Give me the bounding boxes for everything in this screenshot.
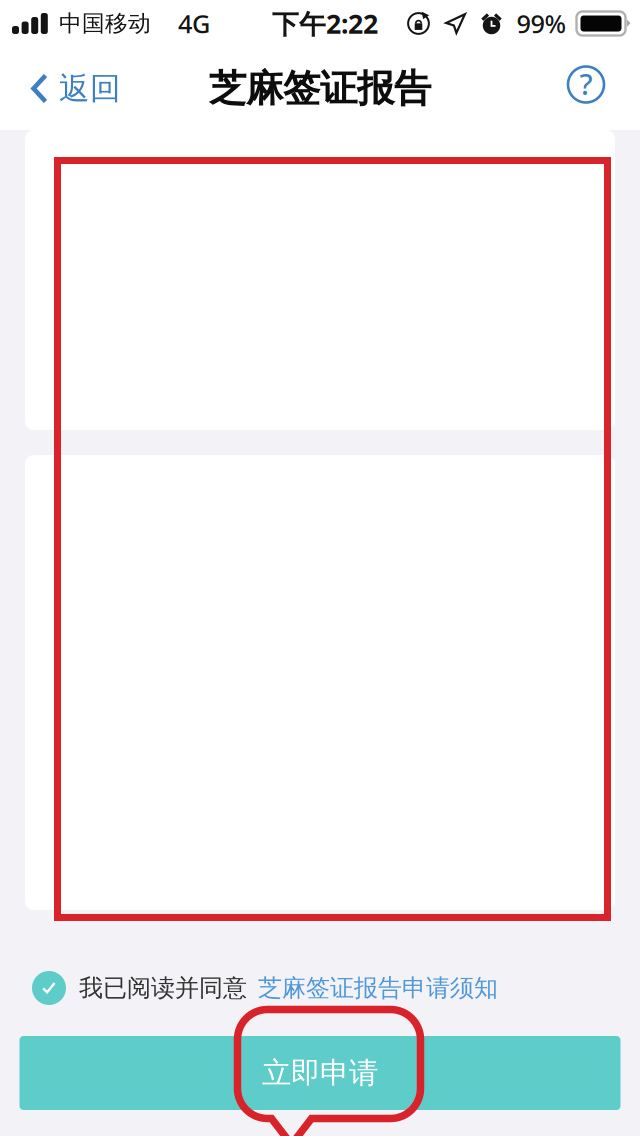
- staticText: 返回: [59, 70, 121, 107]
- staticText: 立即申请: [262, 1055, 378, 1091]
- button[interactable]: 立即申请: [19, 1036, 620, 1110]
- button[interactable]: 返回: [0, 56, 139, 121]
- staticText: 中国移动: [59, 10, 151, 37]
- button[interactable]: Help: [548, 58, 640, 118]
- staticText: 我已阅读并同意: [79, 973, 247, 1003]
- staticText: 4G: [178, 7, 210, 40]
- staticText: 下午2:22: [272, 6, 378, 41]
- staticText: 芝麻签证报告申请须知: [258, 973, 498, 1003]
- button[interactable]: 芝麻签证报告申请须知: [247, 965, 498, 1011]
- staticText: 99%: [516, 7, 566, 40]
- button[interactable]: Agree to terms: [0, 963, 79, 1013]
- staticText: ?: [579, 64, 592, 103]
- staticText: 芝麻签证报告: [209, 66, 431, 111]
